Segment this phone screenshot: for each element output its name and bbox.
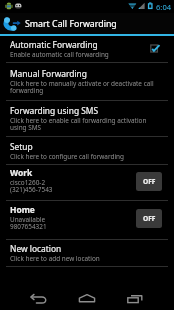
button[interactable]: Back [24, 285, 52, 310]
button[interactable]: Automatic Forwarding [0, 36, 174, 62]
button[interactable]: Automatic forwarding checkbox [148, 42, 162, 56]
staticText: Setup [10, 141, 33, 152]
button[interactable]: OFF [136, 209, 162, 228]
staticText: cisco1260-2 (321)456-7543 [10, 178, 53, 194]
staticText: OFF [143, 214, 156, 223]
button[interactable]: Home [0, 201, 174, 239]
button[interactable]: Home [73, 285, 101, 310]
staticText: New location [10, 243, 62, 254]
staticText: Home [10, 204, 35, 215]
staticText: OFF [143, 177, 156, 186]
staticText: Automatic Forwarding [10, 39, 98, 50]
staticText: Smart Call Forwarding [25, 18, 117, 30]
button[interactable]: Work [0, 165, 174, 200]
staticText: Click here to manually activate or deact… [10, 79, 158, 95]
button[interactable]: New location [0, 240, 174, 266]
button[interactable]: OFF [136, 172, 162, 191]
staticText: Click here to configure call forwarding [10, 152, 124, 161]
button[interactable]: Setup [0, 137, 174, 164]
staticText: Forwarding using SMS [10, 105, 99, 116]
staticText: Click here to add new location [10, 254, 100, 263]
staticText: Enable automatic call forwarding [10, 50, 109, 59]
staticText: Work [10, 167, 33, 178]
staticText: Click here to enable call forwarding act… [10, 116, 158, 132]
staticText: 6:04 [156, 2, 172, 12]
button[interactable]: Forwarding using SMS [0, 101, 174, 136]
staticText: Unavailable 9807654321 [10, 215, 47, 231]
button[interactable]: Manual Forwarding [0, 63, 174, 100]
button[interactable]: Recents [121, 285, 149, 310]
staticText: Manual Forwarding [10, 68, 87, 79]
